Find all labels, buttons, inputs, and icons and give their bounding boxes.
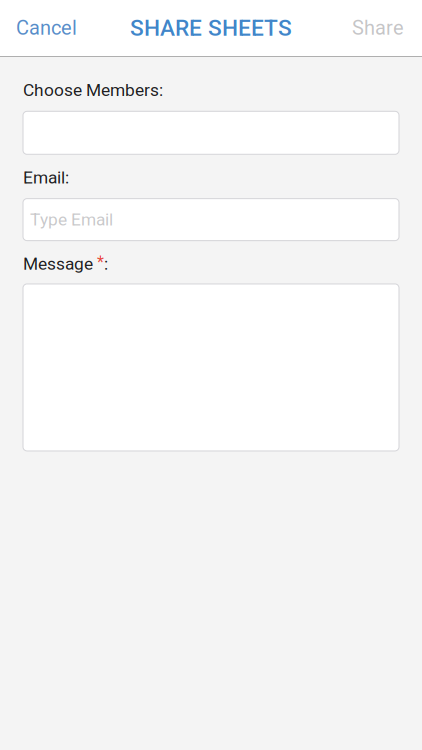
staticText: Choose Members: (23, 80, 163, 100)
staticText: Email: (23, 167, 69, 188)
staticText: SHARE SHEETS (130, 15, 292, 41)
staticText: Cancel (16, 16, 77, 40)
button[interactable]: Choose Members (23, 111, 399, 154)
button[interactable]: Share (334, 0, 422, 56)
staticText: Share (352, 16, 404, 40)
button[interactable]: Cancel (0, 0, 93, 56)
staticText: : (104, 254, 108, 274)
staticText: Type Email (30, 209, 113, 230)
staticText: Message (23, 254, 97, 274)
staticText: * (97, 253, 104, 271)
button[interactable]: Email (23, 199, 399, 241)
